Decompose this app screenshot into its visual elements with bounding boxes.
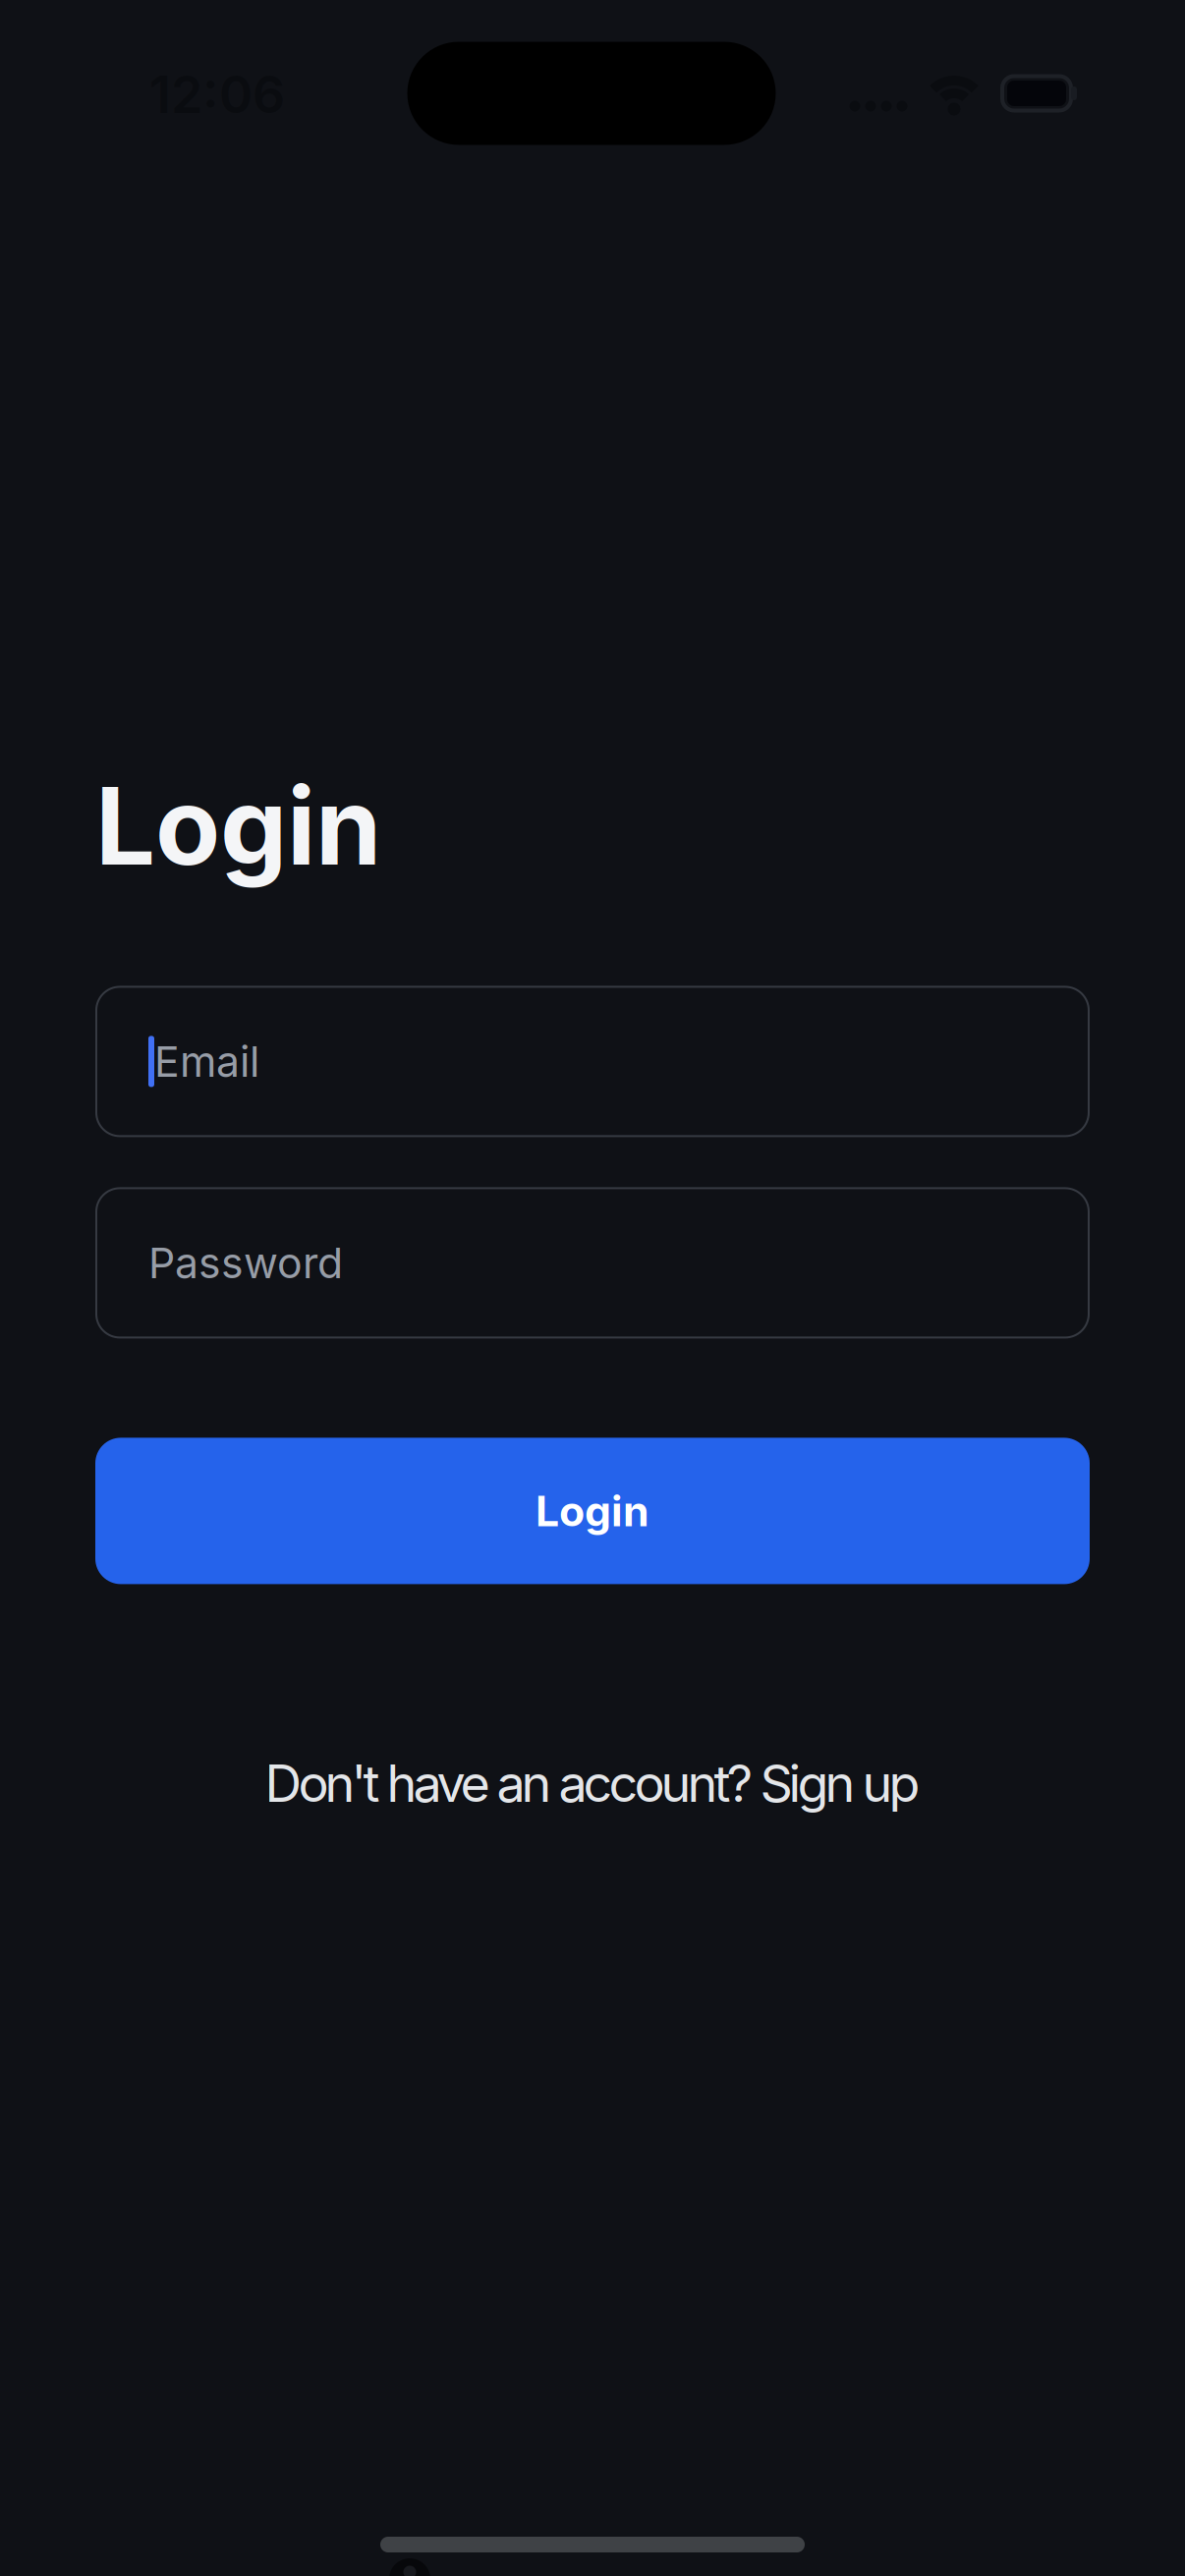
staticText: Login	[536, 1486, 649, 1536]
staticText: Don't have an account? Sign up	[265, 1753, 920, 1813]
button[interactable]: Login	[95, 1438, 1090, 1584]
staticText: Password	[148, 1238, 343, 1288]
button[interactable]: Email	[95, 986, 1090, 1137]
button[interactable]: Don't have an account? Sign up	[95, 1753, 1090, 1813]
staticText: Email	[154, 1037, 259, 1086]
staticText: Login	[95, 763, 381, 889]
button[interactable]: Password	[95, 1187, 1090, 1338]
